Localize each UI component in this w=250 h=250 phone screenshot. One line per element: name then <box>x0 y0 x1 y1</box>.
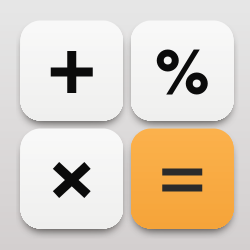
button[interactable]: Percent <box>131 20 233 120</box>
button[interactable]: Add <box>20 20 123 120</box>
button[interactable]: Equals <box>131 128 233 228</box>
button[interactable]: Multiply <box>20 128 123 228</box>
